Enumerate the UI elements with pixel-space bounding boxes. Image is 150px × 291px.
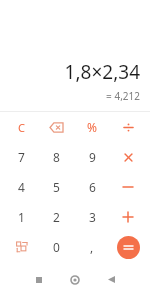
button[interactable]: C [4, 112, 39, 142]
button[interactable]: Multiply [110, 142, 146, 172]
button[interactable]: 3 [74, 202, 110, 232]
button[interactable]: 4 [4, 172, 39, 202]
button[interactable]: 1 [4, 202, 39, 232]
staticText: 0 [53, 239, 60, 255]
button[interactable]: % [74, 112, 110, 142]
button[interactable]: Divide [110, 112, 146, 142]
staticText: 9 [89, 149, 96, 165]
button[interactable]: 5 [39, 172, 74, 202]
button[interactable]: 2 [39, 202, 74, 232]
staticText: 2 [53, 209, 60, 225]
button[interactable]: , [74, 232, 110, 262]
staticText: , [90, 239, 94, 255]
staticText: 1 [18, 209, 25, 225]
button[interactable]: Plus [110, 202, 146, 232]
staticText: 6 [89, 179, 96, 195]
staticText: 1,8×2,34 [64, 59, 140, 85]
button[interactable]: 8 [39, 142, 74, 172]
staticText: 8 [53, 149, 60, 165]
button[interactable]: 0 [39, 232, 74, 262]
staticText: % [87, 119, 97, 135]
staticText: 4 [18, 179, 25, 195]
button[interactable]: 7 [4, 142, 39, 172]
button[interactable]: Equals [117, 236, 140, 259]
button[interactable]: Home [57, 268, 93, 291]
button[interactable]: Backspace [39, 112, 74, 142]
staticText: 5 [53, 179, 60, 195]
staticText: C [18, 120, 25, 135]
staticText: 3 [89, 209, 96, 225]
staticText: = 4,212 [106, 89, 140, 103]
button[interactable]: Scientific mode [4, 232, 39, 262]
button[interactable]: Back [93, 268, 129, 291]
button[interactable]: Recent apps [21, 268, 57, 291]
button[interactable]: Minus [110, 172, 146, 202]
button[interactable]: 6 [74, 172, 110, 202]
button[interactable]: 9 [74, 142, 110, 172]
staticText: 7 [18, 149, 25, 165]
